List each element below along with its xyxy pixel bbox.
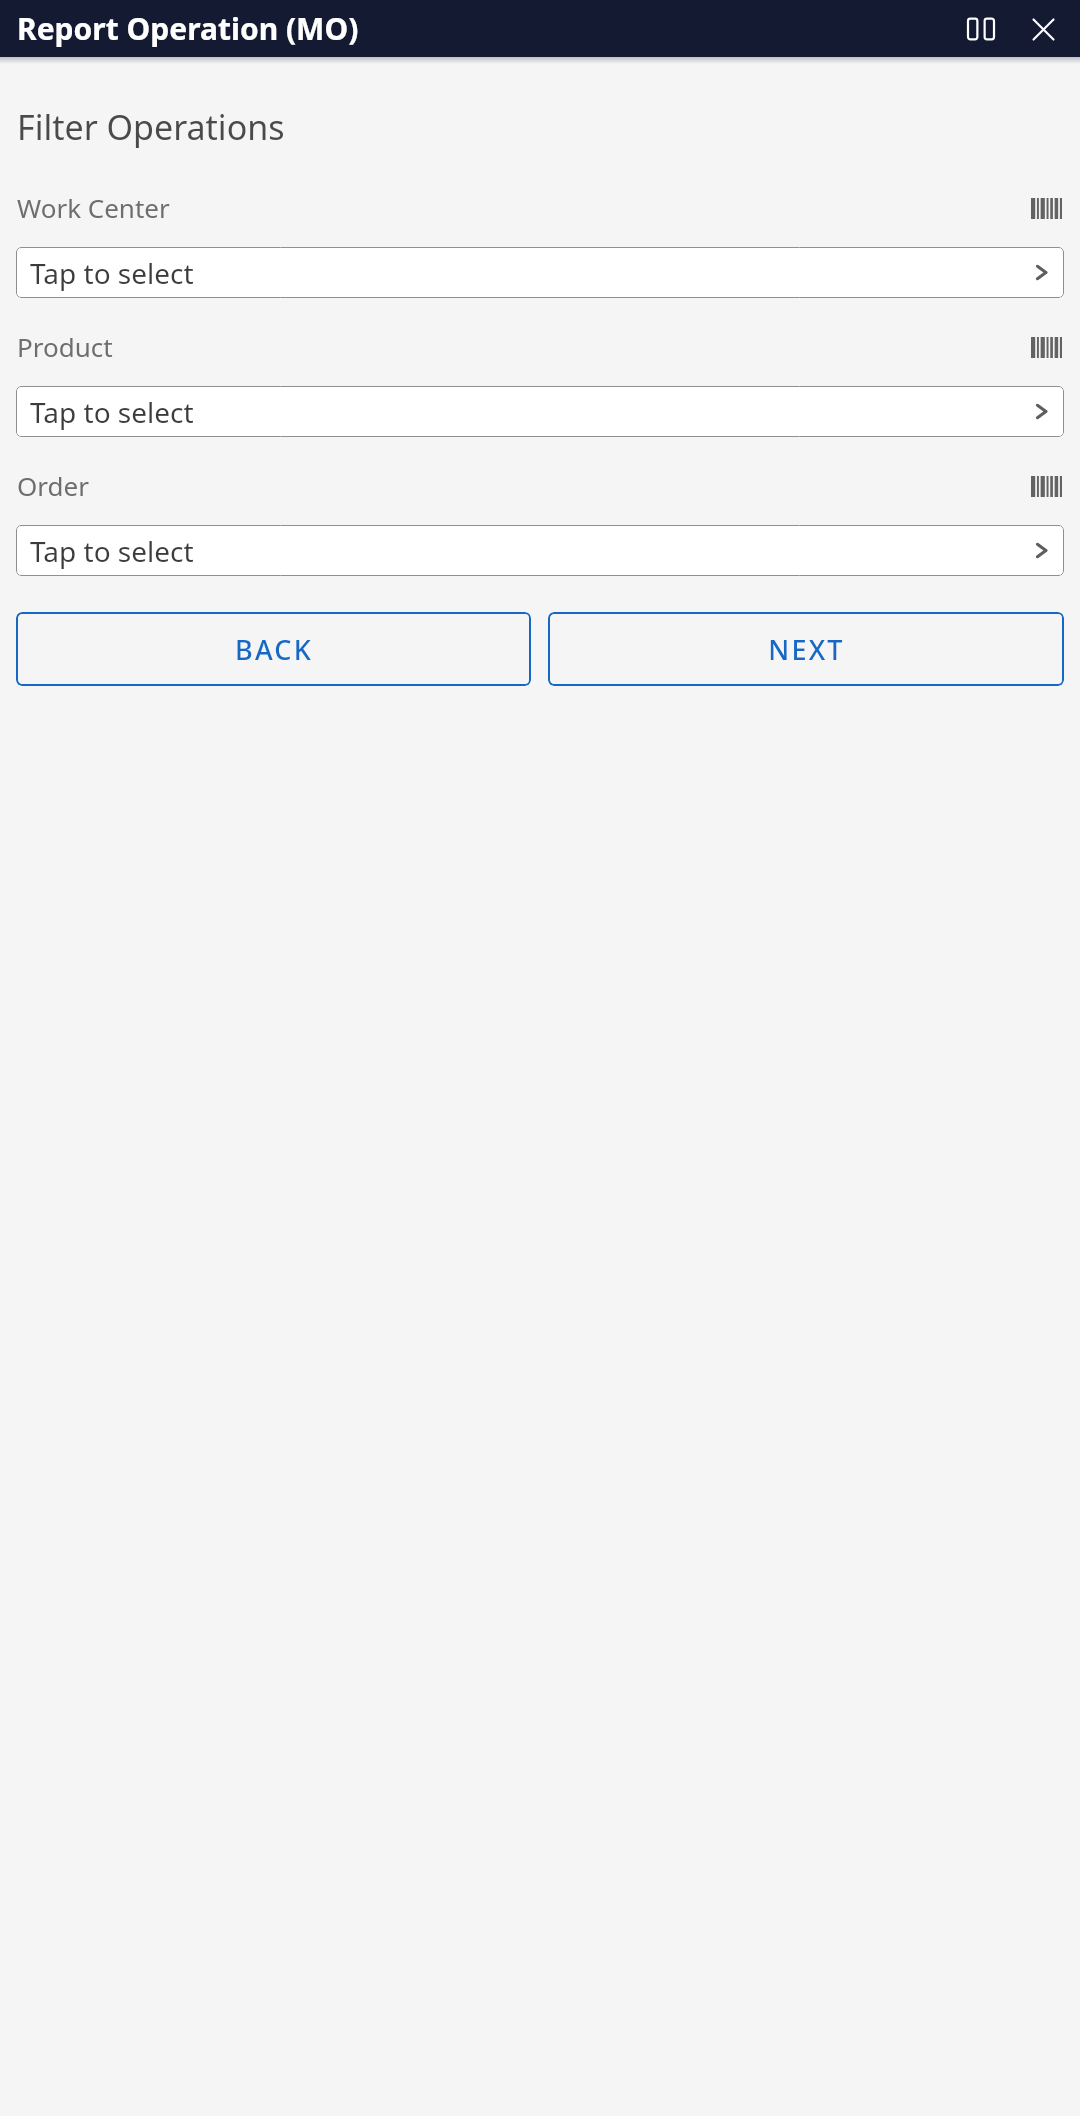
staticText: Report Operation (MO) — [17, 8, 359, 49]
staticText: Tap to select — [30, 393, 194, 431]
button[interactable]: BACK — [16, 612, 531, 686]
button[interactable]: Scan barcode — [1029, 193, 1063, 223]
button[interactable]: Scan barcode — [1029, 471, 1063, 501]
button[interactable]: Scan barcode — [1029, 332, 1063, 362]
button[interactable]: Pause — [958, 6, 1004, 52]
staticText: Tap to select — [30, 254, 194, 292]
staticText: NEXT — [768, 631, 845, 668]
staticText: Order — [17, 468, 89, 503]
button[interactable]: Tap to select — [16, 386, 1064, 437]
staticText: Tap to select — [30, 532, 194, 570]
staticText: Filter Operations — [17, 104, 285, 150]
staticText: BACK — [235, 631, 313, 668]
button[interactable]: Tap to select — [16, 525, 1064, 576]
staticText: Work Center — [17, 190, 170, 225]
button[interactable]: NEXT — [548, 612, 1064, 686]
button[interactable]: Close — [1020, 6, 1066, 52]
staticText: Product — [17, 329, 113, 364]
button[interactable]: Tap to select — [16, 247, 1064, 298]
